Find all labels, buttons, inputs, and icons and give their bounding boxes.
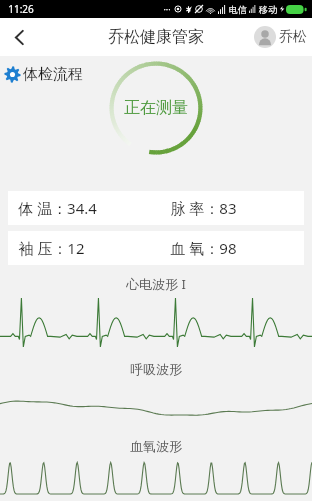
button[interactable]: 体检流程 — [4, 65, 83, 84]
staticText: 电信 — [229, 4, 247, 15]
button[interactable]: 袖 压：12 — [8, 231, 304, 265]
staticText: 体 温：34.4 — [18, 198, 97, 218]
staticText: 心电波形 I — [126, 275, 186, 293]
staticText: 呼吸波形 — [130, 361, 182, 377]
staticText: 移动 — [259, 4, 277, 15]
button[interactable]: 正在测量 — [108, 60, 204, 156]
staticText: 乔松 — [279, 28, 307, 46]
staticText: 正在测量 — [124, 98, 188, 118]
staticText: 袖 压：12 — [18, 238, 85, 258]
button[interactable]: 乔松 — [254, 26, 307, 48]
staticText: 乔松健康管家 — [108, 27, 204, 47]
button[interactable]: Back — [0, 18, 38, 56]
staticText: 血 氧：98 — [170, 238, 237, 258]
staticText: ··· — [163, 3, 171, 15]
button[interactable]: 体 温：34.4 — [8, 191, 304, 225]
staticText: 11:26 — [8, 2, 34, 16]
staticText: 脉 率：83 — [170, 198, 237, 218]
staticText: 体检流程 — [23, 65, 83, 84]
staticText: 血氧波形 — [130, 438, 182, 454]
